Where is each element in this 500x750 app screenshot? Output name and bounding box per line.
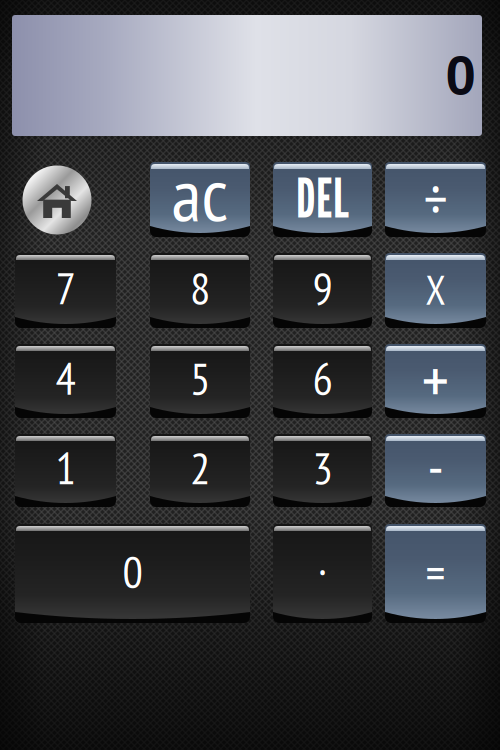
button[interactable]: 5 — [150, 344, 250, 418]
staticText: 0 — [122, 542, 142, 600]
button[interactable]: 6 — [273, 344, 372, 418]
button[interactable]: = — [385, 524, 486, 623]
staticText: 4 — [55, 349, 75, 407]
button[interactable]: Home — [22, 165, 91, 234]
button[interactable]: DEL — [273, 162, 372, 237]
staticText: - — [427, 430, 443, 502]
button[interactable]: X — [385, 253, 486, 328]
button[interactable]: ac — [150, 162, 250, 237]
staticText: X — [425, 264, 445, 316]
staticText: = — [425, 541, 445, 603]
staticText: . — [318, 529, 326, 587]
staticText: 3 — [312, 438, 332, 497]
button[interactable]: 2 — [150, 434, 250, 507]
staticText: ÷ — [423, 160, 447, 236]
button[interactable]: . — [273, 524, 372, 623]
button[interactable]: 8 — [150, 253, 250, 328]
staticText: 7 — [55, 258, 75, 317]
staticText: 8 — [190, 258, 210, 317]
staticText: 0 — [445, 45, 475, 106]
staticText: + — [421, 336, 449, 423]
button[interactable]: - — [385, 434, 486, 507]
button[interactable]: 0 — [15, 524, 250, 623]
button[interactable]: 4 — [15, 344, 116, 418]
button[interactable]: ÷ — [385, 162, 486, 237]
button[interactable]: 1 — [15, 434, 116, 507]
staticText: 6 — [312, 349, 332, 407]
button[interactable]: 3 — [273, 434, 372, 507]
button[interactable]: + — [385, 344, 486, 418]
staticText: 9 — [312, 258, 332, 317]
staticText: 2 — [190, 438, 210, 497]
staticText: 5 — [190, 349, 210, 407]
button[interactable]: 9 — [273, 253, 372, 328]
staticText: 1 — [55, 438, 75, 497]
button[interactable]: 7 — [15, 253, 116, 328]
staticText: DEL — [296, 166, 349, 230]
staticText: ac — [171, 145, 228, 241]
